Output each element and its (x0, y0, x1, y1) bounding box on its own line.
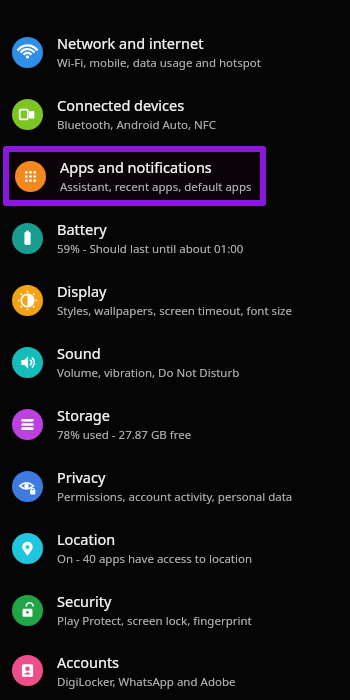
staticText: 59% - Should last until about 01:00 (57, 241, 244, 257)
button[interactable]: Apps and notifications (3, 145, 347, 207)
staticText: Volume, vibration, Do Not Disturb (57, 365, 240, 381)
staticText: Network and internet (57, 33, 204, 53)
staticText: Assistant, recent apps, default apps (60, 179, 252, 195)
staticText: Wi-Fi, mobile, data usage and hotspot (57, 55, 261, 71)
button[interactable]: Location (0, 517, 350, 579)
button[interactable]: Accounts (0, 641, 350, 700)
staticText: Styles, wallpapers, screen timeout, font… (57, 303, 292, 319)
staticText: Bluetooth, Android Auto, NFC (57, 117, 217, 133)
staticText: Display (57, 281, 107, 301)
staticText: Sound (57, 343, 101, 363)
staticText: Privacy (57, 467, 106, 487)
staticText: 78% used - 27.87 GB free (57, 427, 192, 443)
button[interactable]: Privacy (0, 455, 350, 517)
button[interactable]: Connected devices (0, 83, 350, 145)
staticText: Apps and notifications (60, 157, 212, 177)
staticText: Permissions, account activity, personal … (57, 489, 293, 505)
staticText: Storage (57, 405, 110, 425)
button[interactable]: Network and internet (0, 21, 350, 83)
button[interactable]: Battery (0, 207, 350, 269)
button[interactable]: Storage (0, 393, 350, 455)
staticText: Play Protect, screen lock, fingerprint (57, 613, 252, 629)
button[interactable]: Sound (0, 331, 350, 393)
staticText: Location (57, 529, 116, 549)
staticText: On - 40 apps have access to location (57, 551, 253, 567)
staticText: Accounts (57, 652, 120, 672)
button[interactable]: Display (0, 269, 350, 331)
staticText: Security (57, 591, 112, 611)
staticText: Connected devices (57, 95, 185, 115)
button[interactable]: Security (0, 579, 350, 641)
staticText: DigiLocker, WhatsApp and Adobe (57, 674, 236, 690)
staticText: Battery (57, 219, 107, 239)
